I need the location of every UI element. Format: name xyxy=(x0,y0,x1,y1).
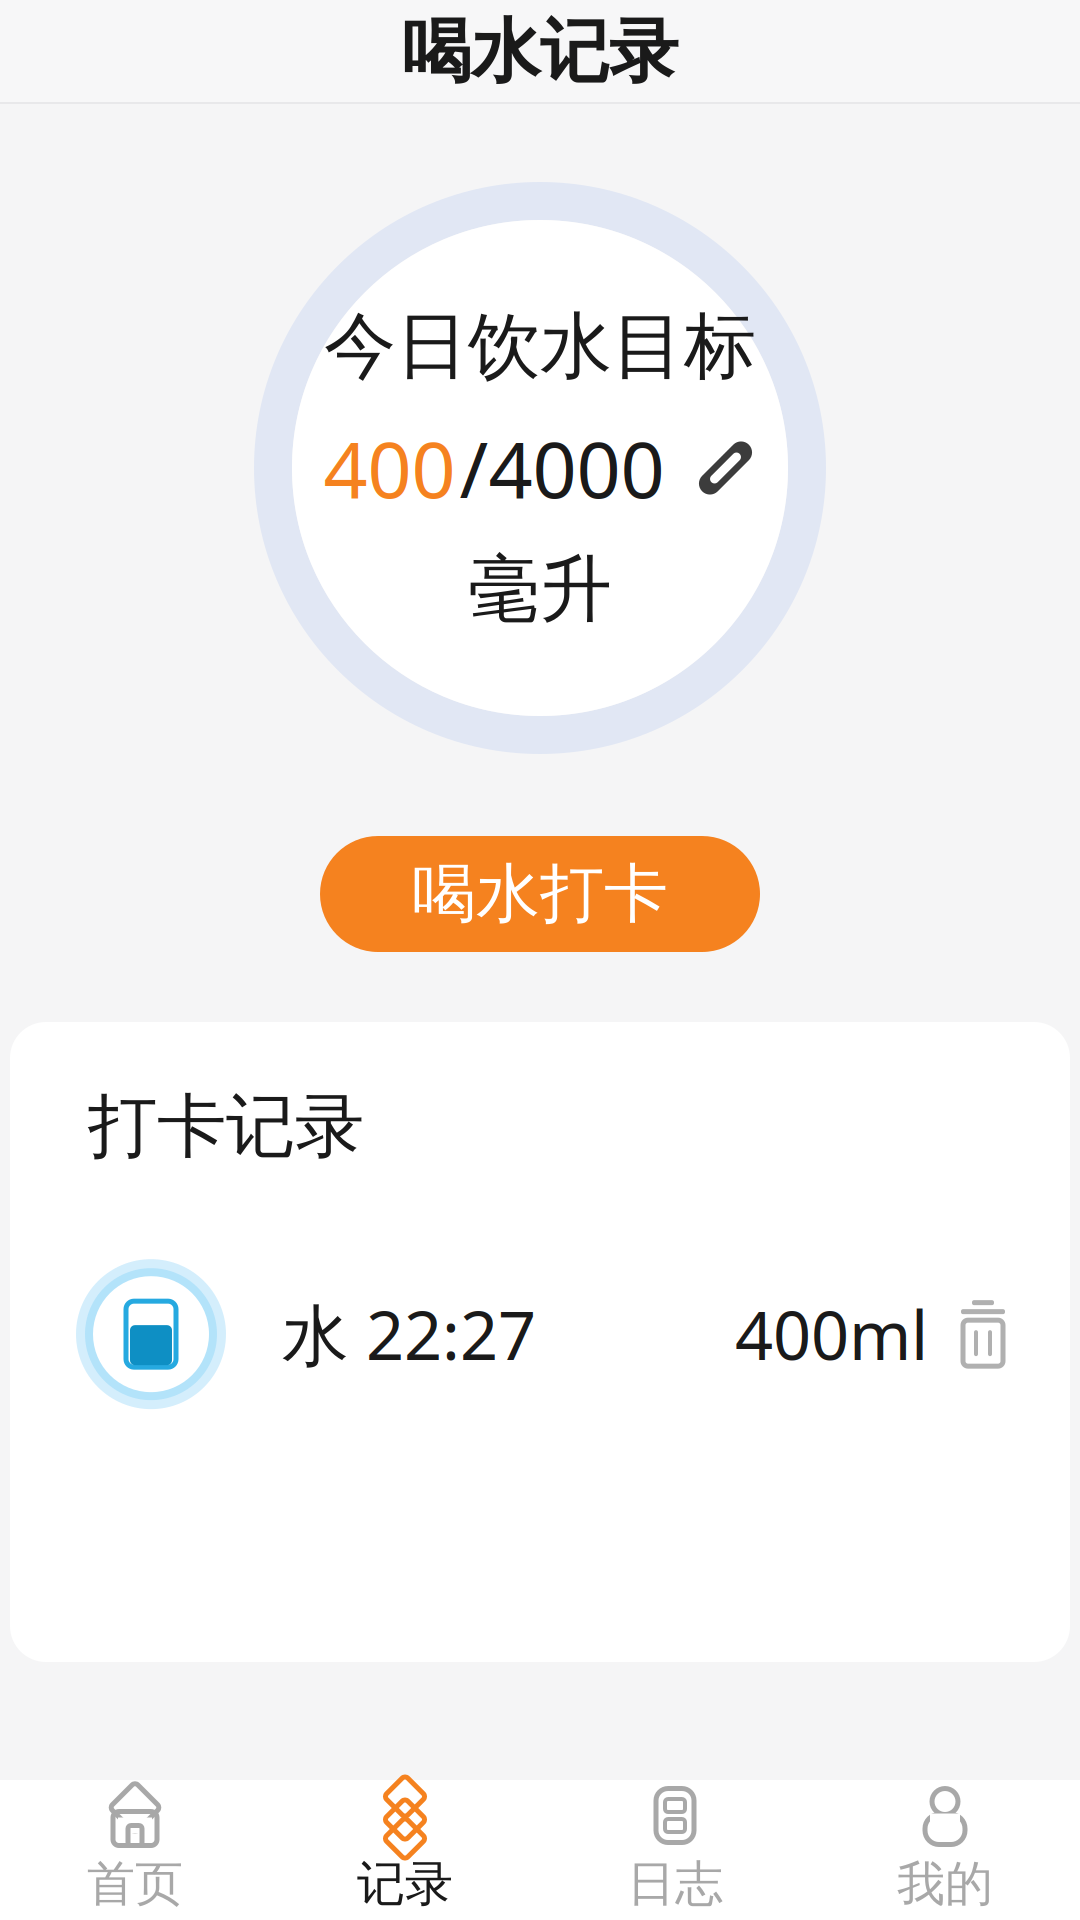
button[interactable]: 记录 xyxy=(270,1780,540,1920)
button[interactable]: 日志 xyxy=(540,1780,810,1920)
button[interactable]: 喝水打卡 xyxy=(320,836,760,952)
staticText: 记录 xyxy=(357,1854,453,1913)
button[interactable]: 首页 xyxy=(0,1780,270,1920)
button[interactable]: 我的 xyxy=(810,1780,1080,1920)
staticText: 今日饮水目标 xyxy=(324,302,756,391)
staticText: 400 xyxy=(323,417,455,519)
staticText: 首页 xyxy=(87,1854,183,1913)
staticText: 毫升 xyxy=(468,545,612,634)
button[interactable]: 删除记录 xyxy=(928,1299,1070,1369)
staticText: 水 22:27 xyxy=(282,1290,536,1378)
staticText: 喝水记录 xyxy=(402,9,678,95)
staticText: 我的 xyxy=(897,1854,993,1913)
button[interactable]: 编辑目标 xyxy=(694,437,756,499)
staticText: 打卡记录 xyxy=(88,1084,364,1169)
staticText: 日志 xyxy=(627,1854,723,1913)
staticText: /4000 xyxy=(459,417,664,519)
staticText: 400ml xyxy=(735,1290,928,1378)
staticText: 喝水打卡 xyxy=(412,855,668,933)
